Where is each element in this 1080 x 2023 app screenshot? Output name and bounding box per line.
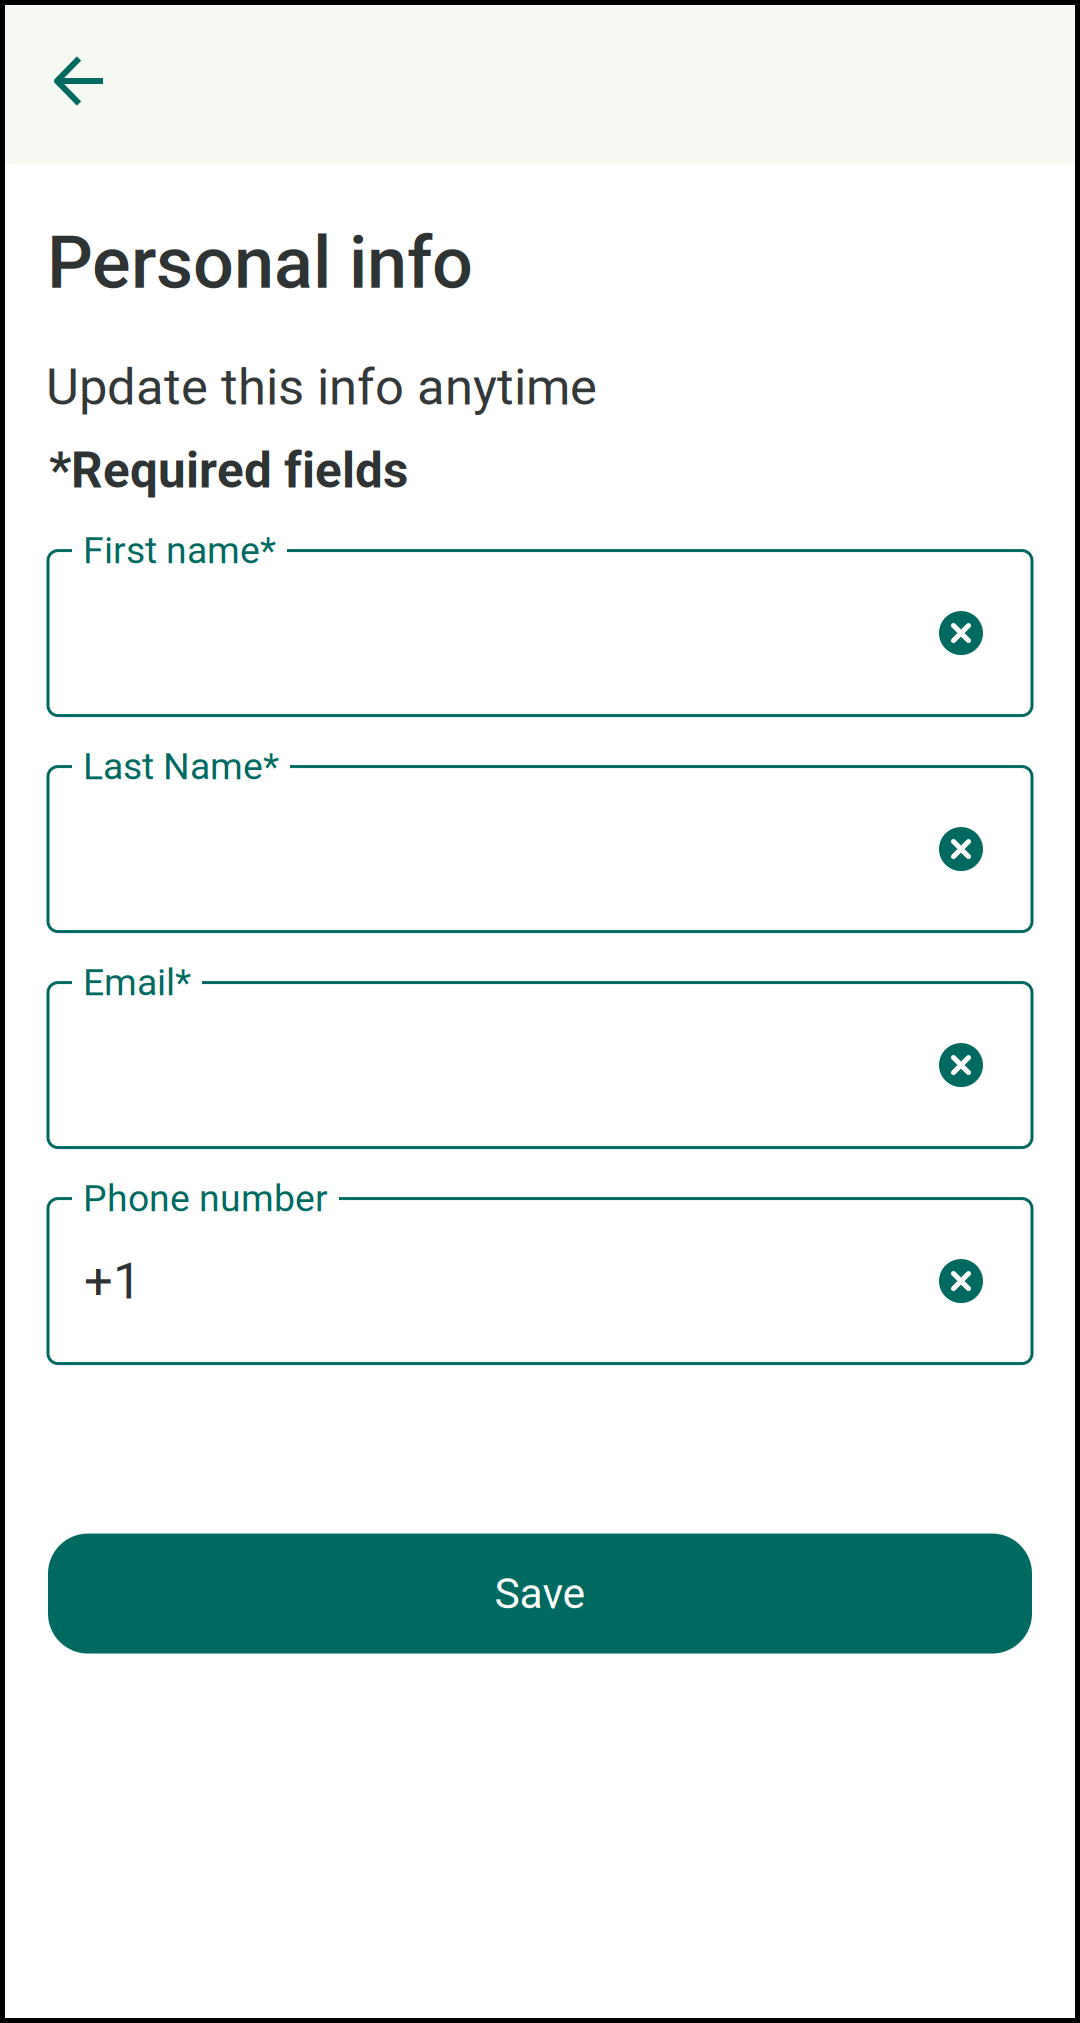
staticText: Last Name* [83, 745, 279, 788]
staticText: Email* [83, 961, 191, 1004]
staticText: Personal info [47, 221, 473, 305]
button[interactable]: Clear [932, 604, 990, 662]
button[interactable]: Clear [932, 820, 990, 878]
staticText: *Required f‌ields [49, 442, 408, 500]
staticText: First name* [83, 529, 276, 572]
staticText: Save [494, 1569, 585, 1619]
button[interactable]: Clear [932, 1036, 990, 1094]
staticText: +1 [84, 1251, 141, 1311]
button[interactable]: Back [0, 23, 134, 140]
staticText: Update this info anytime [46, 357, 597, 417]
button[interactable]: Save [48, 1534, 1032, 1654]
staticText: Phone number [83, 1177, 328, 1220]
button[interactable]: Clear [932, 1252, 990, 1310]
